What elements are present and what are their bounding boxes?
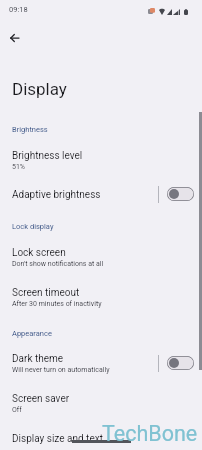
- button[interactable]: Lock screen: [0, 243, 202, 279]
- staticText: Appearance: [12, 329, 52, 338]
- staticText: TechBone: [102, 421, 198, 446]
- staticText: Brightness: [12, 125, 48, 134]
- button[interactable]: Screen timeout: [0, 283, 202, 319]
- staticText: Off: [12, 406, 22, 414]
- staticText: Brightness level: [12, 150, 83, 162]
- staticText: Adaptive brightness: [12, 189, 101, 201]
- staticText: Screen timeout: [12, 287, 80, 299]
- button[interactable]: Toggle: [167, 356, 194, 370]
- button[interactable]: Screen saver: [0, 389, 202, 425]
- button[interactable]: Dark theme: [0, 349, 202, 374]
- staticText: Display size and text: [12, 433, 103, 445]
- button[interactable]: Adaptive brightness: [0, 185, 202, 201]
- staticText: Will never turn on automatically: [12, 366, 110, 374]
- button[interactable]: Back: [2, 26, 26, 50]
- button[interactable]: Brightness level: [0, 146, 202, 182]
- staticText: Dark theme: [12, 353, 64, 365]
- staticText: Lock screen: [12, 247, 66, 259]
- staticText: Lock display: [12, 222, 54, 231]
- button[interactable]: Display size and text: [0, 429, 202, 450]
- staticText: 09:18: [9, 5, 28, 14]
- staticText: Screen saver: [12, 393, 70, 405]
- staticText: 51%: [12, 163, 25, 171]
- staticText: Display: [12, 79, 67, 99]
- staticText: After 30 minutes of inactivity: [12, 300, 102, 308]
- staticText: Don't show notifications at all: [12, 260, 104, 268]
- button[interactable]: Toggle: [167, 187, 194, 201]
